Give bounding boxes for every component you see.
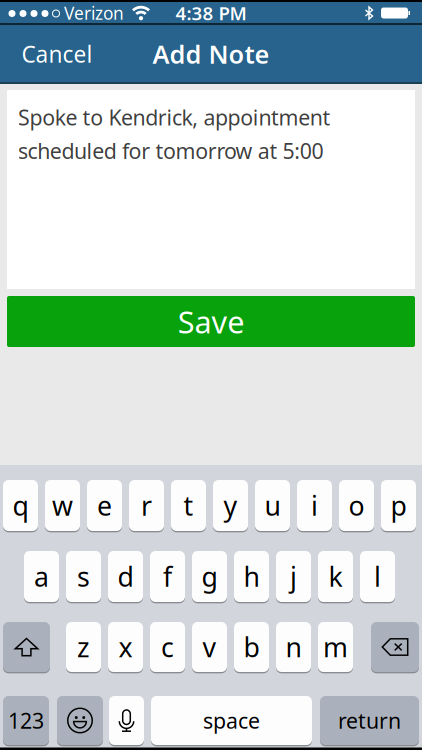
staticText: 123 <box>8 706 44 735</box>
button[interactable]: c <box>150 621 185 673</box>
staticText: v <box>202 629 216 665</box>
button[interactable]: b <box>234 621 269 673</box>
button[interactable]: Dictate <box>109 695 144 746</box>
button[interactable]: k <box>318 550 353 603</box>
staticText: y <box>223 488 237 523</box>
staticText: n <box>285 629 301 665</box>
button[interactable]: d <box>108 550 143 603</box>
staticText: d <box>117 559 133 594</box>
button[interactable]: r <box>129 479 164 532</box>
staticText: Cancel <box>21 39 92 69</box>
button[interactable]: 123 <box>3 695 49 746</box>
staticText: s <box>77 559 90 594</box>
button[interactable]: return <box>320 695 419 746</box>
staticText: b <box>243 629 259 665</box>
button[interactable]: Cancel <box>19 34 95 74</box>
button[interactable]: x <box>108 621 143 673</box>
staticText: p <box>390 488 406 523</box>
button[interactable]: t <box>171 479 206 532</box>
button[interactable]: j <box>276 550 311 603</box>
staticText: Save <box>178 301 244 342</box>
staticText: return <box>338 706 401 735</box>
staticText: Spoke to Kendrick, appointment scheduled… <box>18 103 330 165</box>
staticText: k <box>328 559 342 594</box>
button[interactable]: a <box>24 550 59 603</box>
button[interactable]: q <box>3 479 38 532</box>
button[interactable]: n <box>276 621 311 673</box>
staticText: e <box>97 488 112 523</box>
button[interactable]: Save <box>7 296 415 347</box>
button[interactable]: Emoji <box>57 695 103 746</box>
staticText: h <box>243 559 259 594</box>
staticText: x <box>118 629 132 665</box>
button[interactable]: e <box>87 479 122 532</box>
staticText: w <box>52 488 73 523</box>
button[interactable]: u <box>255 479 290 532</box>
button[interactable]: z <box>66 621 101 673</box>
staticText: 4:38 PM <box>175 1 246 25</box>
staticText: m <box>323 629 348 665</box>
button[interactable]: v <box>192 621 227 673</box>
staticText: space <box>203 706 260 735</box>
staticText: Add Note <box>152 37 269 71</box>
button[interactable]: Delete <box>371 621 419 673</box>
button[interactable]: p <box>381 479 416 532</box>
staticText: q <box>12 488 28 523</box>
button[interactable]: Shift <box>3 621 50 673</box>
staticText: z <box>77 629 90 665</box>
button[interactable]: l <box>360 550 395 603</box>
staticText: j <box>290 559 297 594</box>
staticText: r <box>141 488 152 523</box>
button[interactable]: i <box>297 479 332 532</box>
staticText: u <box>264 488 280 523</box>
button[interactable]: y <box>213 479 248 532</box>
staticText: Verizon <box>64 1 124 24</box>
button[interactable]: f <box>150 550 185 603</box>
staticText: t <box>183 488 193 523</box>
staticText: c <box>161 629 174 665</box>
button[interactable]: o <box>339 479 374 532</box>
staticText: a <box>34 559 49 594</box>
staticText: o <box>348 488 364 523</box>
button[interactable]: h <box>234 550 269 603</box>
staticText: i <box>311 488 318 523</box>
button[interactable]: w <box>45 479 80 532</box>
staticText: g <box>201 559 217 594</box>
staticText: f <box>163 559 172 594</box>
button[interactable]: m <box>318 621 353 673</box>
button[interactable]: s <box>66 550 101 603</box>
staticText: l <box>374 559 381 594</box>
button[interactable]: space <box>151 695 312 746</box>
button[interactable]: g <box>192 550 227 603</box>
